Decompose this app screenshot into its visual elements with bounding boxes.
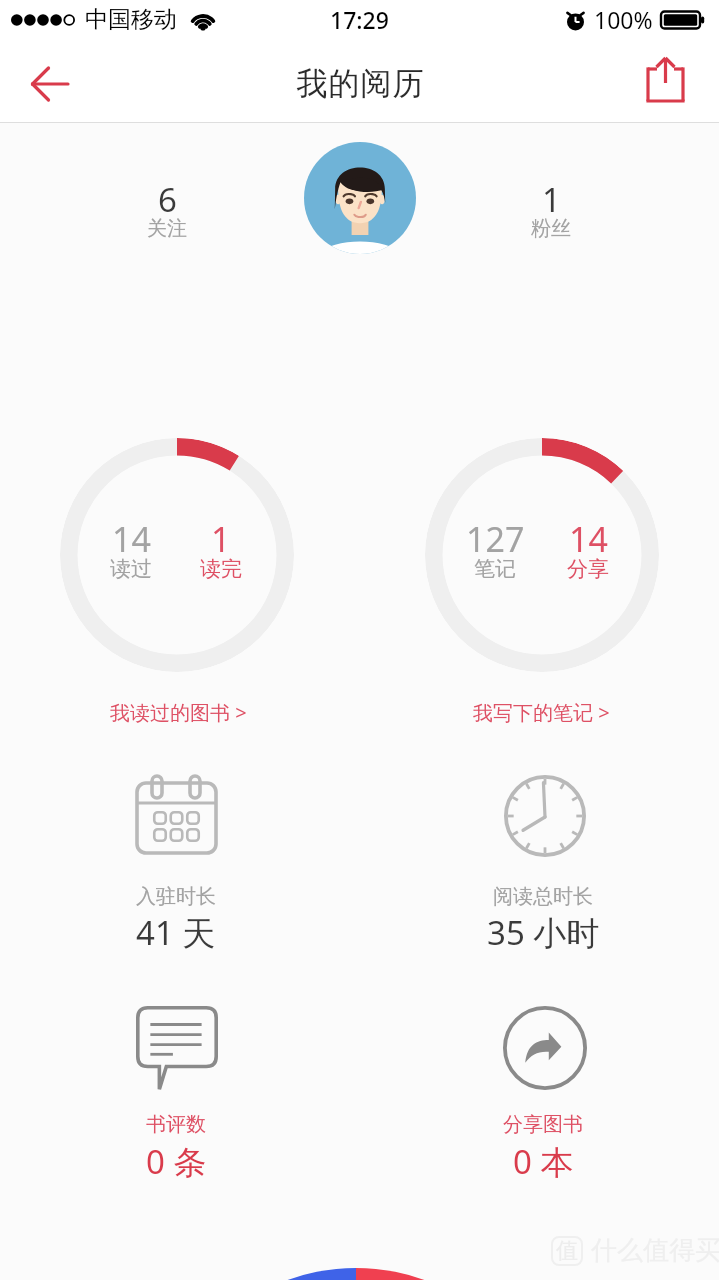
button[interactable] [481,172,621,244]
staticText: 读完 [200,556,242,582]
staticText: 41 天 [136,910,216,955]
staticText: 分享 [567,556,609,582]
staticText: 什么值得买 [591,1234,719,1267]
staticText: 1 [211,516,231,562]
button[interactable] [425,438,659,672]
staticText: 1 [542,177,561,222]
staticText: 0 条 [146,1139,207,1184]
button[interactable]: 我读过的图书 > [58,689,298,735]
staticText: 中国移动 [85,5,177,34]
staticText: 17:29 [330,4,389,35]
staticText: 我读过的图书 > [110,699,247,726]
staticText: 14 [569,516,608,562]
button[interactable]: 我写下的笔记 > [421,689,661,735]
staticText: 入驻时长 [136,884,216,909]
staticText: 我写下的笔记 > [473,699,610,726]
staticText: 127 [466,516,525,562]
staticText: 粉丝 [531,216,571,241]
staticText: 书评数 [146,1112,206,1137]
staticText: 笔记 [474,556,516,582]
staticText: 0 本 [513,1139,574,1184]
staticText: 分享图书 [503,1112,583,1137]
button[interactable]: Total reading time [437,764,649,964]
staticText: 100% [594,4,653,35]
staticText: 关注 [147,216,187,241]
button[interactable]: Share [631,52,699,116]
button[interactable]: Book reviews [70,996,282,1196]
staticText: 14 [112,516,151,562]
button[interactable]: Back [10,52,90,116]
staticText: 我的阅历 [296,64,424,103]
button[interactable]: Avatar [304,142,416,254]
staticText: 6 [158,177,177,222]
button[interactable]: Shared books [437,996,649,1196]
staticText: 35 小时 [487,910,600,955]
button[interactable] [97,172,237,244]
staticText: 阅读总时长 [493,884,593,909]
button[interactable] [60,438,294,672]
staticText: 值 [556,1237,578,1265]
staticText: 读过 [110,556,152,582]
button[interactable]: Days joined [70,764,282,964]
